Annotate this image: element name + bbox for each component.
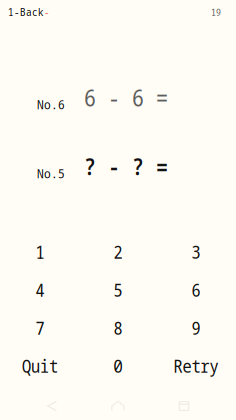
button[interactable]: Retry (157, 360, 235, 372)
staticText: Retry (173, 354, 218, 378)
button[interactable]: 3 (157, 246, 235, 258)
button[interactable]: 4 (1, 284, 79, 296)
staticText: 1-Back (8, 5, 44, 19)
staticText: 5 (113, 278, 122, 302)
button[interactable]: 9 (157, 322, 235, 334)
staticText: 2 (113, 240, 122, 264)
button[interactable]: 6 (157, 284, 235, 296)
staticText: 0 (113, 354, 122, 378)
staticText: - (44, 5, 50, 19)
button[interactable]: 8 (79, 322, 157, 334)
staticText: No.6 (37, 96, 65, 113)
staticText: 8 (113, 316, 122, 340)
button[interactable]: 0 (79, 360, 157, 372)
staticText: 19 (211, 6, 221, 18)
staticText: 6 (191, 278, 200, 302)
staticText: ? - ? = (84, 151, 168, 182)
staticText: Quit (22, 354, 58, 378)
staticText: 7 (35, 316, 44, 340)
button[interactable]: 5 (79, 284, 157, 296)
button[interactable]: Quit (1, 360, 79, 372)
staticText: No.5 (37, 165, 65, 182)
staticText: 4 (35, 278, 44, 302)
button[interactable]: 7 (1, 322, 79, 334)
button[interactable]: 2 (79, 246, 157, 258)
staticText: 3 (191, 240, 200, 264)
button[interactable]: 1 (1, 246, 79, 258)
staticText: 1 (35, 240, 44, 264)
staticText: 9 (191, 316, 200, 340)
staticText: 6 - 6 = (84, 82, 168, 113)
